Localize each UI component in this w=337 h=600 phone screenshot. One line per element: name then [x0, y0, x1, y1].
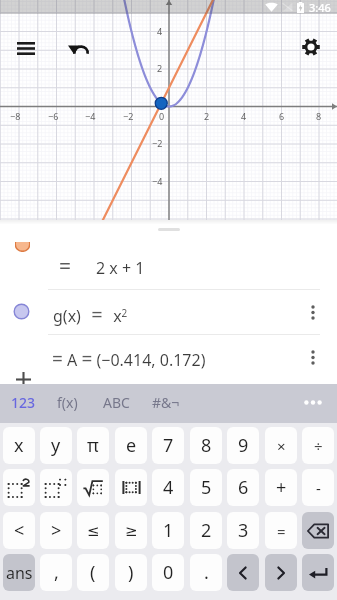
button[interactable]: + — [265, 469, 297, 506]
staticText: 8 — [316, 110, 322, 122]
button[interactable]: 123 — [5, 388, 42, 416]
staticText: −8 — [10, 110, 21, 122]
staticText: = — [277, 521, 286, 541]
staticText: 5 — [201, 475, 212, 500]
button[interactable]: 8 — [190, 427, 222, 464]
button[interactable]: - — [302, 469, 334, 506]
staticText: 2 — [204, 110, 210, 122]
staticText: −4 — [85, 110, 96, 122]
button[interactable]: 6 — [227, 469, 259, 506]
staticText: ) — [128, 560, 134, 585]
button[interactable]: = — [0, 244, 337, 289]
staticText: ans — [6, 562, 33, 584]
staticText: × — [277, 436, 286, 456]
button[interactable]: 7 — [152, 427, 184, 464]
button[interactable]: 5 — [190, 469, 222, 506]
button[interactable]: 3 — [227, 512, 259, 549]
button[interactable]: g(x) = x2 — [0, 289, 337, 334]
staticText: 3 — [238, 518, 249, 543]
staticText: 3:46 — [309, 0, 331, 14]
staticText: 6 — [238, 475, 249, 500]
button[interactable]: = — [265, 512, 297, 549]
button[interactable]: More keyboard options — [295, 387, 331, 417]
staticText: = — [59, 252, 72, 281]
button[interactable]: ≤ — [77, 512, 109, 549]
staticText: 8 — [201, 433, 212, 458]
button[interactable]: Square — [3, 469, 35, 506]
staticText: ABC — [103, 393, 130, 412]
button[interactable]: , — [40, 554, 72, 591]
staticText: x — [14, 433, 24, 458]
staticText: . — [204, 560, 209, 585]
staticText: y — [51, 433, 61, 458]
button[interactable]: × — [265, 427, 297, 464]
button[interactable]: y — [40, 427, 72, 464]
button[interactable]: Absolute value — [115, 469, 147, 506]
button[interactable]: Power — [40, 469, 72, 506]
staticText: ≤ — [87, 522, 100, 539]
staticText: 7 — [163, 433, 174, 458]
staticText: #&¬ — [152, 393, 180, 412]
staticText: g(x) = x2 — [53, 301, 128, 328]
button[interactable]: Move left — [227, 554, 259, 591]
staticText: 6 — [279, 110, 285, 122]
staticText: −6 — [48, 110, 59, 122]
button[interactable]: More options — [300, 297, 326, 327]
staticText: 1 — [163, 518, 174, 543]
button[interactable]: Enter — [302, 554, 334, 591]
button[interactable]: ) — [115, 554, 147, 591]
staticText: π — [87, 433, 99, 458]
button[interactable]: 9 — [227, 427, 259, 464]
button[interactable]: f(x) — [51, 388, 84, 416]
staticText: > — [51, 518, 62, 543]
staticText: ÷ — [314, 436, 323, 456]
staticText: 123 — [11, 393, 36, 412]
button[interactable]: . — [190, 554, 222, 591]
staticText: −4 — [152, 175, 163, 187]
button[interactable]: 2 — [190, 512, 222, 549]
staticText: e — [126, 433, 137, 458]
button[interactable]: Undo — [62, 32, 94, 64]
button[interactable]: Square root — [77, 469, 109, 506]
staticText: < — [14, 518, 25, 543]
staticText: 0 — [159, 110, 165, 122]
staticText: ≥ — [125, 522, 138, 539]
button[interactable]: Add expression — [11, 367, 36, 392]
button[interactable]: 4 — [152, 469, 184, 506]
button[interactable]: ≥ — [115, 512, 147, 549]
staticText: 4 — [157, 25, 163, 37]
button[interactable]: 1 — [152, 512, 184, 549]
button[interactable]: < — [3, 512, 35, 549]
button[interactable]: e — [115, 427, 147, 464]
button[interactable]: > — [40, 512, 72, 549]
staticText: ( — [90, 560, 96, 585]
button[interactable]: #&¬ — [146, 388, 186, 416]
button[interactable]: More options — [300, 342, 326, 372]
button[interactable]: ( — [77, 554, 109, 591]
staticText: 2 — [157, 62, 163, 74]
button[interactable]: π — [77, 427, 109, 464]
button[interactable]: ABC — [97, 388, 136, 416]
button[interactable]: Settings — [295, 31, 327, 63]
staticText: 2 — [201, 518, 212, 543]
staticText: - — [316, 478, 321, 498]
button[interactable]: Move right — [265, 554, 297, 591]
staticText: −2 — [152, 137, 163, 149]
staticText: 0 — [163, 560, 174, 585]
staticText: 9 — [238, 433, 249, 458]
button[interactable]: Backspace — [302, 512, 334, 549]
staticText: = A = (−0.414, 0.172) — [52, 346, 206, 372]
button[interactable]: ans — [3, 554, 35, 591]
button[interactable]: ÷ — [302, 427, 334, 464]
staticText: 4 — [163, 475, 174, 500]
staticText: −2 — [123, 110, 134, 122]
button[interactable]: 0 — [152, 554, 184, 591]
staticText: , — [54, 560, 59, 585]
staticText: f(x) — [57, 393, 78, 412]
staticText: 2 x + 1 — [96, 257, 145, 279]
staticText: 4 — [241, 110, 247, 122]
button[interactable]: Menu — [10, 32, 42, 64]
staticText: + — [276, 475, 287, 500]
button[interactable]: = A = (−0.414, 0.172) — [0, 334, 337, 379]
button[interactable]: x — [3, 427, 35, 464]
